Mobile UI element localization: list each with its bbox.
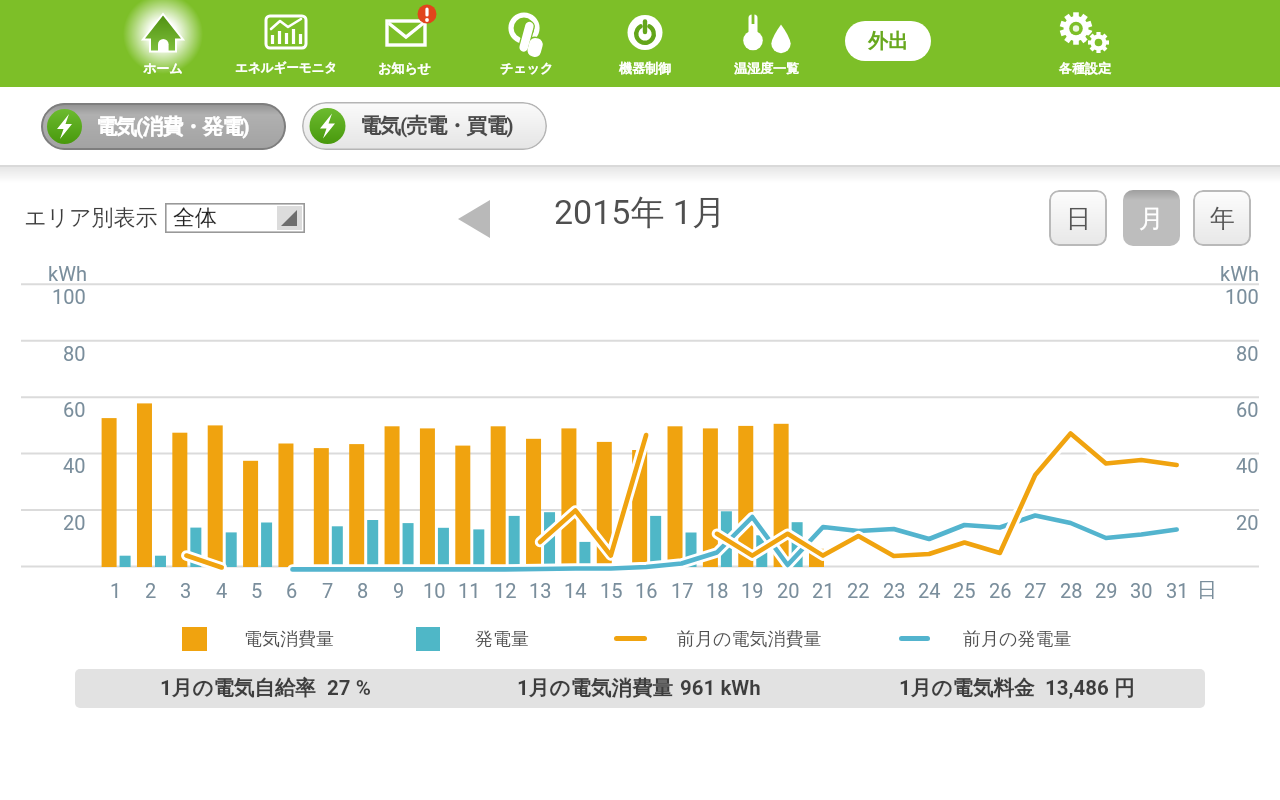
staticText: 22 (847, 579, 870, 602)
staticText: 80 (63, 342, 86, 365)
staticText: 20 (1236, 511, 1259, 534)
staticText: 前月の発電量 (963, 628, 1072, 651)
staticText: kWh (1220, 262, 1259, 285)
staticText: 全体 (173, 204, 217, 232)
button[interactable] (302, 102, 547, 150)
staticText: 11 (458, 579, 481, 602)
button[interactable]: 月 (1123, 190, 1180, 246)
staticText: ホーム (143, 60, 183, 76)
staticText: 9 (393, 579, 405, 602)
staticText: 80 (1236, 342, 1259, 365)
staticText: 60 (63, 398, 86, 421)
staticText: 電気(売電・買電) (360, 113, 513, 139)
staticText: 1 (110, 579, 122, 602)
button[interactable]: 年 (1193, 190, 1251, 246)
staticText: 13 (529, 579, 552, 602)
staticText: 15 (600, 579, 623, 602)
staticText: 2 (145, 579, 157, 602)
staticText: kWh (48, 262, 87, 285)
staticText: 24 (918, 579, 941, 602)
staticText: 60 (1236, 398, 1259, 421)
staticText: 4 (216, 579, 228, 602)
button[interactable] (231, 4, 341, 84)
staticText: 電気消費量 (244, 628, 334, 651)
staticText: 温湿度一覧 (734, 60, 799, 76)
staticText: 30 (1130, 579, 1153, 602)
staticText: 40 (63, 454, 86, 477)
staticText: 3 (180, 579, 192, 602)
staticText: 1月の電気料金 (899, 675, 1035, 701)
staticText: チェック (500, 60, 554, 76)
staticText: 100 (52, 285, 86, 308)
button[interactable] (590, 4, 700, 84)
staticText: 40 (1236, 454, 1259, 477)
staticText: 年 (1210, 203, 1235, 234)
staticText: 28 (1060, 579, 1083, 602)
staticText: 17 (671, 579, 694, 602)
staticText: 1月の電気自給率 (160, 675, 316, 701)
staticText: 日 (1197, 578, 1217, 603)
staticText: 14 (564, 579, 587, 602)
staticText: 1月の電気消費量 (517, 675, 673, 701)
staticText: 21 (812, 579, 835, 602)
button[interactable]: 日 (1049, 190, 1107, 246)
staticText: 27 (1024, 579, 1047, 602)
button[interactable] (450, 195, 498, 243)
staticText: 前月の電気消費量 (677, 628, 822, 651)
staticText: 13,486 円 (1045, 675, 1135, 701)
staticText: 25 (953, 579, 976, 602)
button[interactable] (108, 4, 218, 84)
staticText: 26 (989, 579, 1012, 602)
staticText: 月 (1139, 203, 1164, 234)
staticText: 19 (741, 579, 764, 602)
staticText: 10 (423, 579, 446, 602)
button[interactable] (1030, 4, 1140, 84)
staticText: エリア別表示 (24, 204, 158, 232)
staticText: お知らせ (378, 60, 431, 76)
staticText: 8 (357, 579, 369, 602)
button[interactable] (472, 4, 582, 84)
staticText: 日 (1066, 203, 1091, 234)
staticText: 5 (251, 579, 263, 602)
staticText: 7 (322, 579, 334, 602)
staticText: 29 (1095, 579, 1118, 602)
staticText: 電気(消費・発電) (96, 114, 249, 140)
staticText: エネルギーモニタ (235, 60, 338, 76)
staticText: 31 (1166, 579, 1189, 602)
staticText: 18 (706, 579, 729, 602)
staticText: 6 (286, 579, 298, 602)
staticText: 961 kWh (680, 676, 761, 700)
button[interactable] (165, 203, 305, 233)
button[interactable]: 外出 (845, 21, 931, 61)
button[interactable] (349, 4, 459, 84)
staticText: 外出 (868, 29, 908, 54)
button[interactable] (711, 4, 821, 84)
staticText: 発電量 (475, 628, 529, 651)
staticText: 20 (777, 579, 800, 602)
staticText: 20 (63, 511, 86, 534)
staticText: 各種設定 (1059, 60, 1111, 76)
staticText: 100 (1225, 285, 1259, 308)
staticText: 2015年 1月 (554, 191, 726, 234)
staticText: 機器制御 (619, 60, 671, 76)
staticText: 12 (494, 579, 517, 602)
button[interactable] (41, 103, 286, 150)
staticText: 27 % (327, 676, 371, 700)
staticText: 16 (635, 579, 658, 602)
staticText: 23 (883, 579, 906, 602)
